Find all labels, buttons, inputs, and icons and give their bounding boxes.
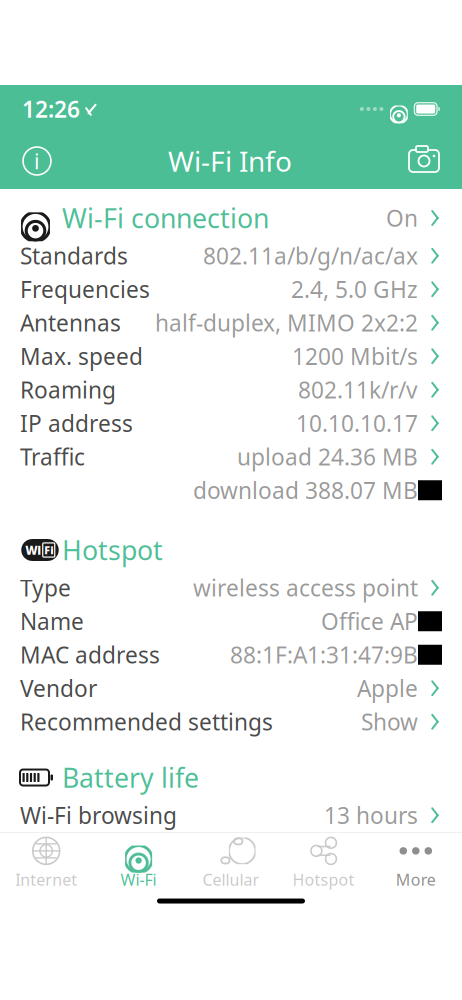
staticText: Wi-Fi browsing bbox=[20, 800, 177, 830]
button[interactable]: Wi-Fi connection bbox=[0, 197, 462, 239]
staticText: 10.10.10.17 bbox=[296, 408, 418, 438]
staticText: Apple bbox=[357, 673, 418, 703]
button[interactable] bbox=[0, 473, 462, 507]
staticText: Wi-Fi connection bbox=[62, 200, 269, 236]
button[interactable]: Traffic bbox=[0, 440, 462, 473]
button[interactable]: Vendor bbox=[0, 671, 462, 705]
button[interactable]: IP address bbox=[0, 406, 462, 440]
staticText: Wi bbox=[25, 542, 41, 558]
staticText: 1200 Mbit/s bbox=[292, 341, 418, 371]
button[interactable]: Hotspot bbox=[277, 830, 370, 890]
staticText: 88:1F:A1:31:47:9B bbox=[230, 640, 418, 670]
button[interactable]: Standards bbox=[0, 239, 462, 272]
staticText: MAC address bbox=[20, 640, 160, 670]
staticText: IP address bbox=[20, 408, 133, 438]
button[interactable]: Wi-Fi bbox=[92, 830, 185, 890]
staticText: Office AP bbox=[321, 606, 418, 636]
staticText: Standards bbox=[20, 241, 128, 271]
staticText: 12:26 bbox=[22, 94, 80, 124]
button[interactable]: Internet bbox=[0, 830, 92, 890]
staticText: Wi-Fi Info bbox=[168, 142, 292, 180]
staticText: Internet bbox=[15, 869, 77, 890]
staticText: Frequencies bbox=[20, 274, 150, 304]
staticText: Vendor bbox=[20, 673, 97, 703]
button[interactable]: Battery life bbox=[0, 756, 462, 798]
staticText: Max. speed bbox=[20, 341, 143, 371]
staticText: 802.11k/r/v bbox=[298, 375, 418, 405]
button[interactable]: MAC address bbox=[0, 638, 462, 671]
staticText: On bbox=[386, 203, 418, 233]
button[interactable]: Roaming bbox=[0, 373, 462, 406]
staticText: Battery life bbox=[62, 760, 199, 795]
button[interactable]: Cellular bbox=[185, 830, 277, 890]
staticText: Wi-Fi bbox=[121, 869, 157, 890]
staticText: 13 hours bbox=[324, 800, 418, 830]
staticText: half-duplex, MIMO 2x2:2 bbox=[155, 308, 418, 338]
staticText: More bbox=[396, 869, 436, 890]
staticText: wireless access point bbox=[193, 573, 418, 603]
staticText: Hotspot bbox=[292, 869, 354, 890]
button[interactable]: Wi-Fi browsing bbox=[0, 798, 462, 832]
staticText: Traffic bbox=[20, 442, 85, 472]
staticText: Recommended settings bbox=[20, 707, 273, 737]
button[interactable]: Wi bbox=[0, 529, 462, 571]
staticText: Type bbox=[20, 573, 71, 603]
staticText: Show bbox=[361, 707, 418, 737]
staticText: Roaming bbox=[20, 375, 116, 405]
staticText: upload 24.36 MB bbox=[237, 442, 418, 472]
button[interactable]: Frequencies bbox=[0, 272, 462, 306]
staticText: Cellular bbox=[202, 869, 259, 890]
staticText: download 388.07 MB bbox=[193, 475, 418, 505]
button[interactable]: Recommended settings bbox=[0, 705, 462, 738]
staticText: 802.11a/b/g/n/ac/ax bbox=[203, 241, 418, 271]
staticText: Hotspot bbox=[62, 532, 163, 568]
button[interactable]: Name bbox=[0, 604, 462, 638]
button[interactable]: Screenshot bbox=[406, 146, 442, 176]
button[interactable]: More bbox=[370, 830, 462, 890]
button[interactable]: Type bbox=[0, 571, 462, 604]
staticText: Name bbox=[20, 606, 84, 636]
button[interactable]: Antennas bbox=[0, 306, 462, 339]
button[interactable]: Max. speed bbox=[0, 339, 462, 373]
staticText: 2.4, 5.0 GHz bbox=[291, 274, 418, 304]
staticText: Fi bbox=[44, 543, 53, 557]
staticText: Antennas bbox=[20, 308, 121, 338]
button[interactable]: Information bbox=[20, 144, 54, 178]
staticText: i bbox=[34, 147, 40, 175]
